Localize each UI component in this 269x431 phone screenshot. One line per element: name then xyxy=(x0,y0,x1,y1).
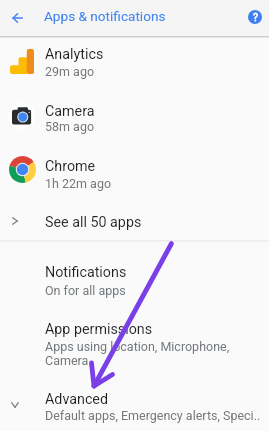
staticText: 1h 22m ago xyxy=(45,176,112,191)
staticText: Advanced xyxy=(45,391,109,408)
staticText: 58m ago xyxy=(45,119,95,134)
button[interactable]: Camera xyxy=(0,93,269,149)
staticText: App permissions xyxy=(45,321,153,338)
staticText: ? xyxy=(253,11,258,23)
button[interactable]: App permissions xyxy=(0,310,269,370)
staticText: On for all apps xyxy=(45,283,232,298)
button[interactable]: Help xyxy=(243,5,267,29)
button[interactable]: See all 50 apps xyxy=(0,200,269,240)
staticText: Default apps, Emergency alerts, Speci.. xyxy=(45,408,261,423)
staticText: Apps using location, Microphone, Camera xyxy=(45,339,232,368)
staticText: Camera xyxy=(45,103,95,120)
button[interactable]: Advanced xyxy=(0,380,269,431)
staticText: Chrome xyxy=(45,158,96,175)
button[interactable]: Analytics xyxy=(0,37,269,93)
staticText: See all 50 apps xyxy=(45,214,142,231)
staticText: 29m ago xyxy=(45,64,95,79)
staticText: Apps & notifications xyxy=(44,8,166,24)
staticText: Analytics xyxy=(45,46,104,63)
staticText: Notifications xyxy=(45,264,127,281)
button[interactable]: Navigate up xyxy=(5,6,29,30)
button[interactable]: Notifications xyxy=(0,252,269,312)
button[interactable]: Chrome xyxy=(0,149,269,205)
